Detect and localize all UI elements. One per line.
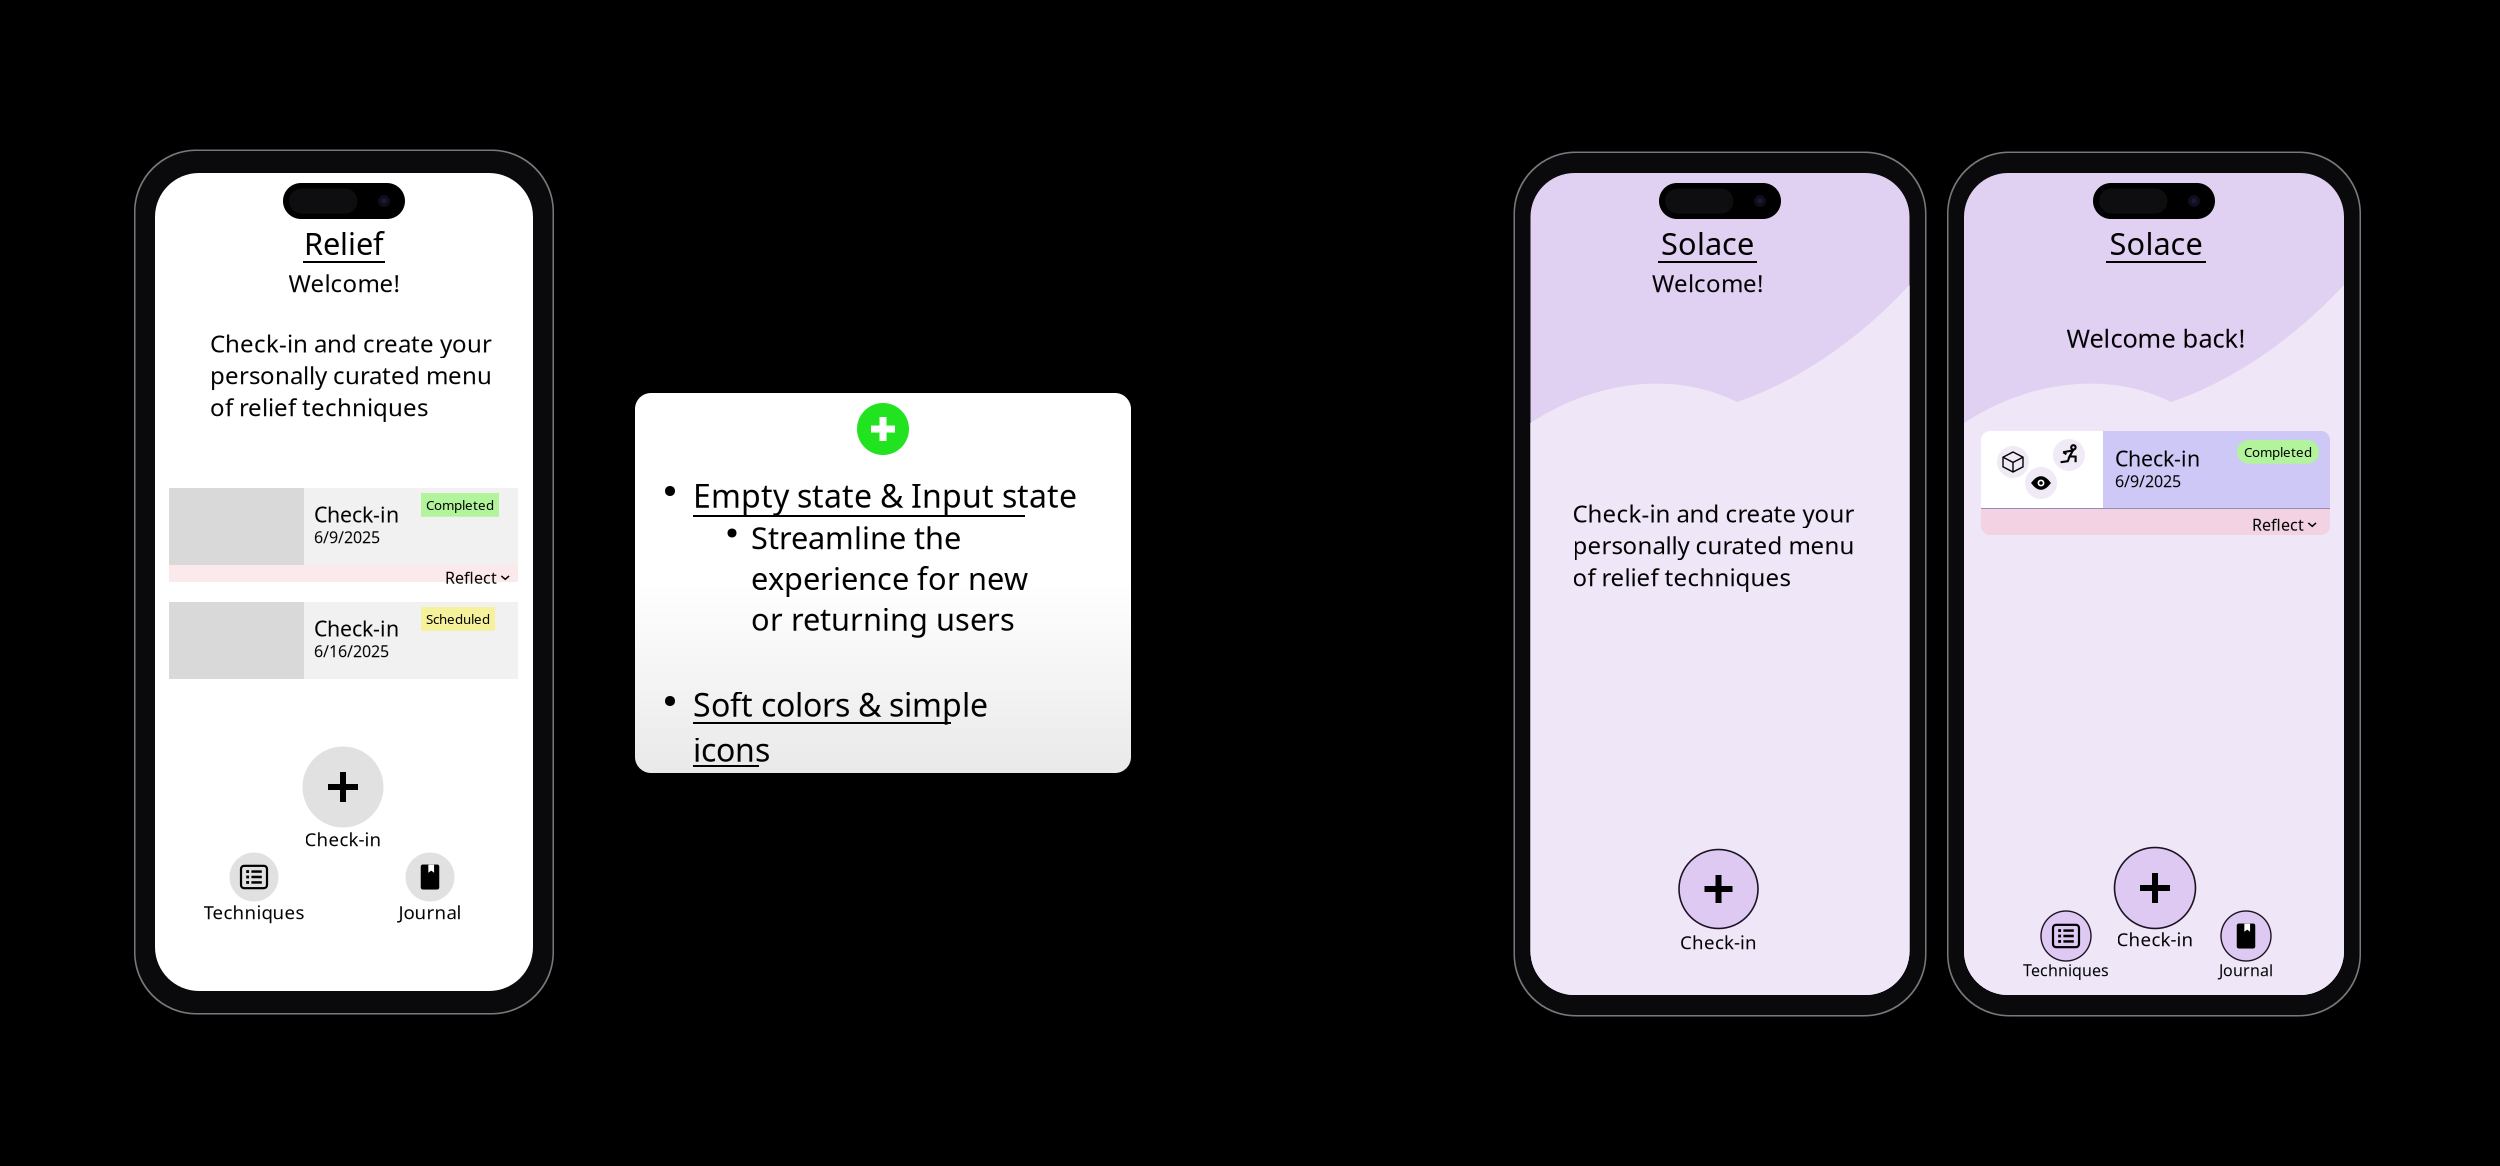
staticText: Relief — [304, 223, 384, 263]
staticText: Techniques — [203, 900, 304, 924]
staticText: Journal — [2219, 959, 2273, 981]
staticText: Journal — [398, 900, 461, 924]
staticText: 6/16/2025 — [314, 640, 389, 661]
staticText: Check-in and create your personally cura… — [1572, 497, 1854, 593]
staticText: Check-in — [2115, 444, 2200, 472]
staticText: Welcome back! — [2066, 321, 2245, 355]
staticText: Solace — [1661, 223, 1754, 263]
button[interactable]: Check-in — [169, 488, 518, 582]
staticText: Check-in — [314, 500, 399, 528]
staticText: Solace — [2109, 223, 2202, 263]
staticText: Soft colors & simple — [693, 683, 988, 725]
staticText: Welcome! — [1652, 267, 1763, 299]
button[interactable]: Check-in — [1981, 431, 2330, 535]
button[interactable] — [2114, 847, 2195, 928]
button[interactable] — [1679, 849, 1758, 928]
staticText: Check-in — [304, 827, 381, 851]
button[interactable]: Check-in — [169, 602, 518, 679]
button[interactable]: Check-in — [302, 746, 383, 827]
staticText: 6/9/2025 — [314, 526, 380, 547]
button[interactable]: Techniques — [229, 852, 278, 901]
button[interactable]: Journal — [405, 852, 454, 901]
staticText: Scheduled — [426, 610, 490, 628]
staticText: Completed — [426, 496, 494, 514]
button[interactable]: Techniques — [2041, 911, 2091, 961]
staticText: Reflect — [2252, 514, 2304, 535]
staticText: 6/9/2025 — [2115, 470, 2181, 491]
staticText: Check-in and create your personally cura… — [210, 327, 492, 423]
staticText: Techniques — [2023, 959, 2109, 981]
button[interactable]: Journal — [2221, 911, 2271, 961]
staticText: Check-in — [1680, 930, 1757, 954]
staticText: Check-in — [2116, 927, 2193, 951]
staticText: Check-in — [314, 614, 399, 642]
staticText: icons — [693, 728, 770, 770]
staticText: Welcome! — [288, 267, 399, 299]
staticText: Streamline the experience for new or ret… — [751, 517, 1028, 639]
staticText: Empty state & Input state — [693, 474, 1077, 516]
staticText: Completed — [2244, 443, 2312, 461]
staticText: Reflect — [445, 567, 497, 588]
